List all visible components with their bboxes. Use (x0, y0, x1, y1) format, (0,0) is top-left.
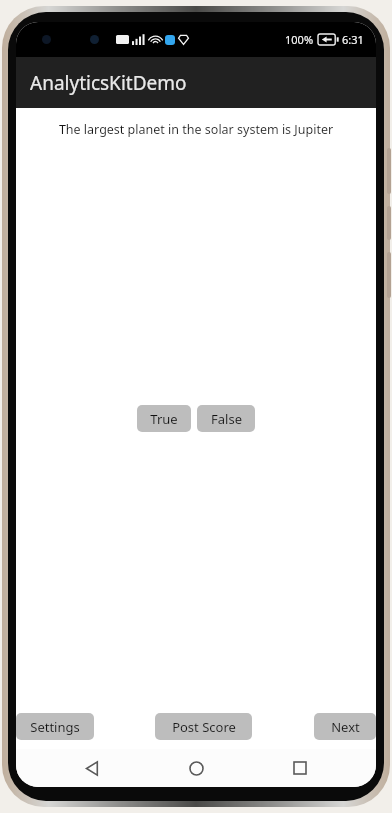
button[interactable]: Post Score (155, 713, 252, 740)
staticText: AnalyticsKitDemo (30, 70, 187, 96)
staticText: False (211, 410, 242, 428)
staticText: Next (331, 718, 360, 736)
staticText: 6:31 (342, 32, 364, 47)
button[interactable]: False (197, 405, 255, 432)
staticText: Post Score (172, 718, 236, 736)
staticText: Settings (30, 718, 80, 736)
staticText: 100% (285, 32, 314, 47)
staticText: The largest planet in the solar system i… (26, 121, 366, 138)
button[interactable]: Home (174, 749, 218, 787)
button[interactable]: Next (314, 713, 376, 740)
button[interactable]: Settings (16, 713, 94, 740)
button[interactable]: Recent apps (278, 749, 322, 787)
staticText: True (150, 410, 178, 428)
button[interactable]: True (137, 405, 191, 432)
button[interactable]: Back (70, 749, 114, 787)
